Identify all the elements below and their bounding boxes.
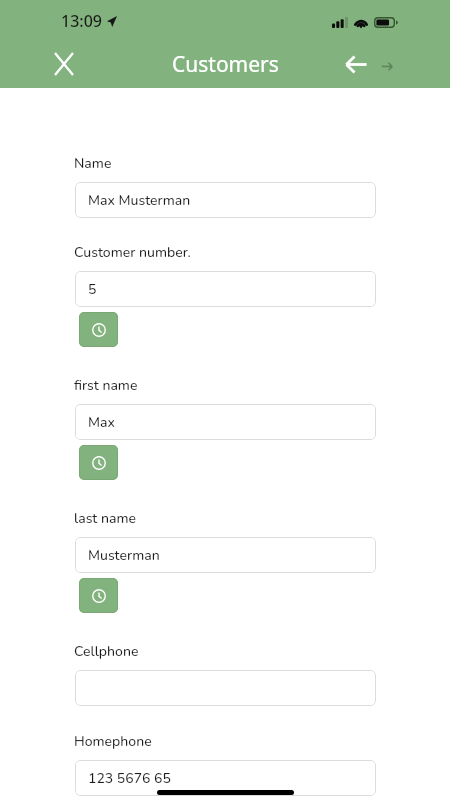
button[interactable]: Musterman: [75, 537, 376, 573]
button[interactable]: Previous: [340, 48, 372, 78]
button[interactable]: History: [79, 312, 118, 347]
button[interactable]: 123 5676 65: [75, 760, 376, 796]
button[interactable]: History: [79, 578, 118, 613]
button[interactable]: Max: [75, 404, 376, 440]
button[interactable]: Max Musterman: [75, 182, 376, 218]
staticText: Name: [74, 154, 112, 173]
button[interactable]: History: [79, 445, 118, 480]
staticText: Customers: [172, 50, 279, 79]
staticText: Homephone: [74, 732, 152, 751]
staticText: first name: [74, 376, 138, 395]
staticText: Max: [88, 413, 115, 432]
button[interactable]: Next: [376, 51, 398, 75]
button[interactable]: [75, 670, 376, 706]
button[interactable]: Close: [50, 48, 78, 78]
button[interactable]: 5: [75, 271, 376, 307]
staticText: Cellphone: [74, 642, 139, 661]
staticText: 13:09: [61, 10, 102, 32]
staticText: last name: [74, 509, 137, 528]
staticText: Musterman: [88, 546, 160, 565]
staticText: 5: [88, 280, 97, 299]
staticText: Customer number.: [74, 243, 191, 262]
staticText: 123 5676 65: [88, 769, 171, 788]
staticText: Max Musterman: [88, 191, 191, 210]
